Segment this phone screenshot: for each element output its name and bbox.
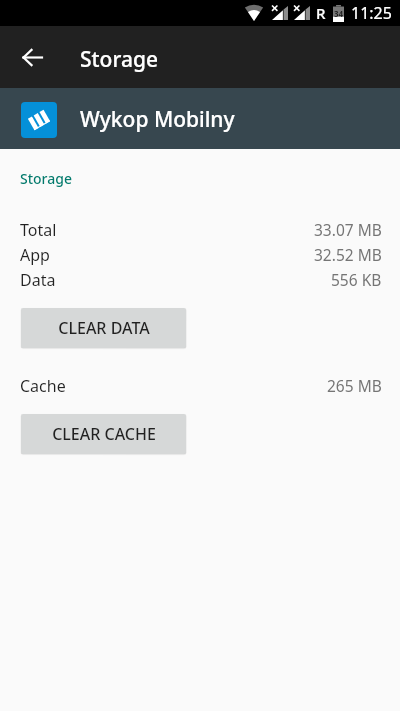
staticText: CLEAR DATA bbox=[58, 317, 150, 339]
button[interactable]: CLEAR DATA bbox=[21, 308, 186, 348]
staticText: Total bbox=[20, 219, 57, 241]
staticText: Cache bbox=[20, 375, 66, 397]
staticText: 265 MB bbox=[327, 375, 382, 396]
staticText: Wykop Mobilny bbox=[80, 105, 235, 134]
staticText: 33.07 MB bbox=[314, 219, 382, 240]
staticText: Data bbox=[20, 269, 56, 291]
staticText: Storage bbox=[80, 45, 158, 74]
staticText: CLEAR CACHE bbox=[52, 423, 156, 445]
button[interactable]: Navigate up bbox=[12, 37, 52, 77]
staticText: App bbox=[20, 244, 50, 266]
staticText: Storage bbox=[20, 169, 72, 188]
staticText: 11:25 bbox=[351, 2, 392, 24]
button[interactable]: Wykop Mobilny bbox=[0, 88, 400, 149]
staticText: 32.52 MB bbox=[314, 244, 382, 265]
button[interactable]: CLEAR CACHE bbox=[21, 414, 186, 454]
staticText: 556 KB bbox=[331, 269, 382, 290]
staticText: 34 bbox=[334, 8, 344, 19]
staticText: R bbox=[316, 3, 326, 23]
